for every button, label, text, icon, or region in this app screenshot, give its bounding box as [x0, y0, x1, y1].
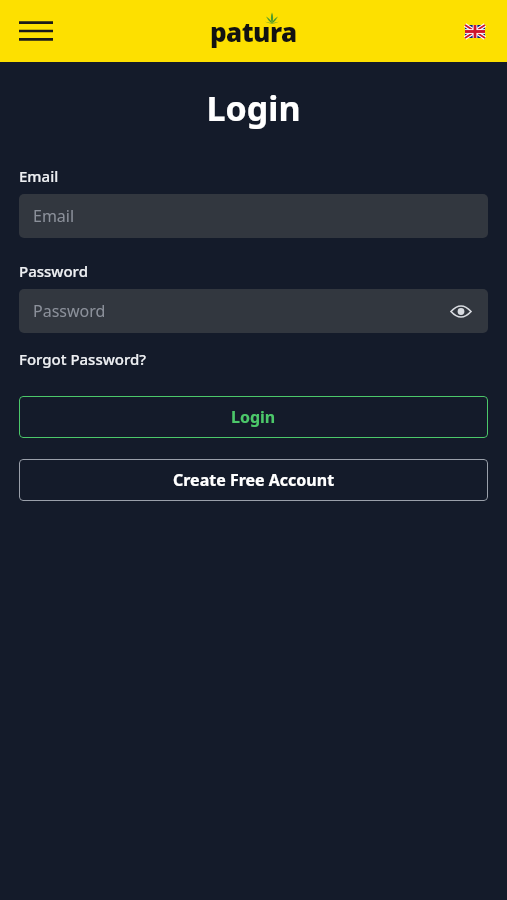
staticText: Password: [19, 261, 88, 281]
button[interactable]: Email: [19, 194, 488, 238]
button[interactable]: Forgot Password?: [19, 349, 147, 369]
button[interactable]: Menu: [12, 7, 60, 55]
staticText: Email: [33, 205, 75, 227]
staticText: patura: [210, 14, 297, 49]
staticText: Email: [19, 166, 59, 186]
button[interactable]: Create Free Account: [19, 459, 488, 501]
staticText: Password: [33, 300, 106, 322]
staticText: Login: [0, 85, 507, 131]
button[interactable]: Show password: [444, 294, 478, 328]
button[interactable]: Language: [457, 13, 493, 49]
staticText: Login: [231, 406, 276, 428]
staticText: Create Free Account: [173, 469, 335, 491]
button[interactable]: Login: [19, 396, 488, 438]
staticText: Forgot Password?: [19, 349, 147, 369]
button[interactable]: Password: [19, 289, 488, 333]
